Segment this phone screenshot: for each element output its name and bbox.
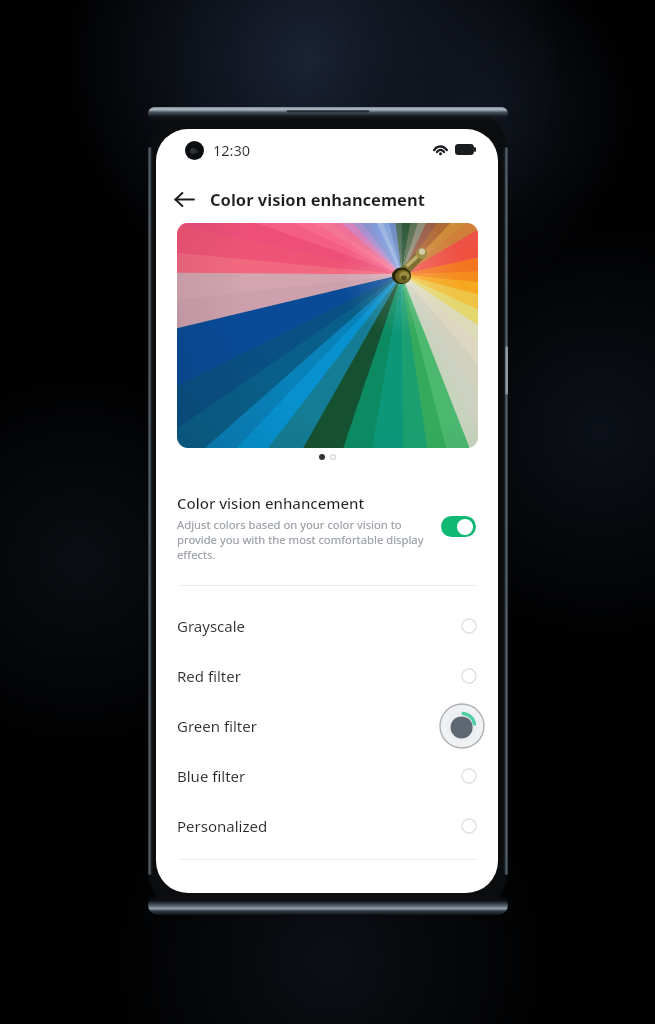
staticText: Adjust colors based on your color vision… (177, 517, 433, 562)
button[interactable]: Red filter (156, 651, 498, 701)
staticText: Color vision enhancement (210, 188, 425, 210)
button[interactable]: Color vision enhancement (156, 487, 498, 593)
staticText: Blue filter (177, 766, 246, 786)
button[interactable]: Grayscale (156, 601, 498, 651)
staticText: Green filter (177, 716, 257, 736)
staticText: Personalized (177, 816, 268, 836)
staticText: 12:30 (213, 140, 251, 160)
staticText: Grayscale (177, 616, 246, 636)
staticText: Red filter (177, 666, 241, 686)
button[interactable]: Green filter (156, 701, 498, 751)
button[interactable]: Blue filter (156, 751, 498, 801)
button[interactable]: Personalized (156, 801, 498, 851)
button[interactable]: Back (165, 180, 203, 218)
staticText: Color vision enhancement (177, 493, 365, 513)
button[interactable]: Color vision sample image (177, 223, 478, 448)
button[interactable]: Color vision enhancement switch (441, 516, 476, 537)
